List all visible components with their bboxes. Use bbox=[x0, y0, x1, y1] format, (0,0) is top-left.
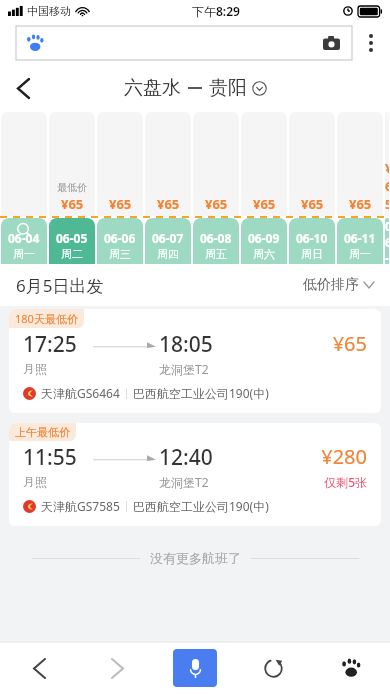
staticText: 周五 bbox=[205, 247, 227, 261]
staticText: 天津航GS6464 bbox=[41, 385, 120, 401]
staticText: 180天最低价 bbox=[15, 311, 78, 326]
staticText: 六盘水 bbox=[124, 76, 181, 100]
button[interactable]: Refresh bbox=[234, 642, 312, 694]
staticText: 06-08 bbox=[200, 230, 232, 246]
staticText: 没有更多航班了 bbox=[150, 550, 241, 566]
button[interactable]: ¥65 bbox=[336, 112, 384, 264]
staticText: 06-11 bbox=[344, 230, 376, 246]
staticText: ¥280 bbox=[321, 443, 367, 470]
staticText: 06-12 bbox=[385, 218, 389, 261]
staticText: 06-06 bbox=[104, 230, 136, 246]
button[interactable]: 06-04 bbox=[0, 112, 48, 264]
button[interactable]: Back bbox=[0, 642, 78, 694]
button[interactable]: 180天最低价 bbox=[9, 309, 381, 413]
staticText: 低价排序 bbox=[303, 276, 359, 294]
staticText: ¥65 bbox=[332, 330, 367, 357]
button[interactable]: Search bbox=[16, 26, 352, 60]
staticText: 仅剩5张 bbox=[324, 474, 367, 490]
button[interactable]: ¥65 bbox=[192, 112, 240, 264]
staticText: ¥65 bbox=[205, 195, 228, 213]
staticText: ¥65 bbox=[301, 195, 324, 213]
staticText: 月照 bbox=[23, 474, 47, 489]
staticText: 最低价 bbox=[57, 181, 87, 194]
staticText: ¥65 bbox=[253, 195, 276, 213]
staticText: 6月5日出发 bbox=[16, 274, 104, 297]
staticText: 周一 bbox=[349, 247, 371, 261]
staticText: ¥65 bbox=[349, 195, 372, 213]
staticText: 中国移动 bbox=[27, 4, 71, 18]
staticText: 06-10 bbox=[296, 230, 328, 246]
button[interactable]: ¥65 bbox=[288, 112, 336, 264]
button[interactable]: 六盘水 bbox=[124, 76, 267, 100]
staticText: 06-04 bbox=[8, 230, 40, 246]
button[interactable]: ¥65 bbox=[96, 112, 144, 264]
staticText: 06-09 bbox=[248, 230, 280, 246]
staticText: 18:05 bbox=[159, 330, 213, 359]
staticText: 龙洞堡T2 bbox=[159, 361, 209, 377]
staticText: 周二 bbox=[61, 247, 83, 261]
staticText: 月照 bbox=[23, 361, 47, 376]
button[interactable]: Voice search bbox=[173, 649, 217, 687]
staticText: ¥65 bbox=[61, 195, 84, 213]
staticText: 下午8:29 bbox=[192, 3, 240, 19]
button[interactable]: 最低价 bbox=[48, 112, 96, 264]
staticText: 周三 bbox=[109, 247, 131, 261]
staticText: ¥65 bbox=[385, 159, 389, 213]
staticText: 天津航GS7585 bbox=[41, 498, 120, 514]
staticText: 06-07 bbox=[152, 230, 184, 246]
staticText: ¥65 bbox=[109, 195, 132, 213]
button[interactable]: ¥65 bbox=[144, 112, 192, 264]
button[interactable]: Forward bbox=[78, 642, 156, 694]
button[interactable]: 上午最低价 bbox=[9, 423, 381, 526]
staticText: 17:25 bbox=[23, 330, 77, 359]
staticText: 周日 bbox=[301, 247, 323, 261]
staticText: 巴西航空工业公司190(中) bbox=[133, 498, 269, 514]
button[interactable]: Baidu home bbox=[312, 642, 390, 694]
staticText: 周六 bbox=[253, 247, 275, 261]
button[interactable]: ¥65 bbox=[384, 112, 390, 264]
button[interactable]: More options bbox=[352, 22, 390, 64]
staticText: 巴西航空工业公司190(中) bbox=[133, 385, 269, 401]
button[interactable]: ¥65 bbox=[240, 112, 288, 264]
staticText: 龙洞堡T2 bbox=[159, 474, 209, 490]
staticText: 11:55 bbox=[23, 443, 77, 472]
staticText: 周四 bbox=[157, 247, 179, 261]
button[interactable]: 低价排序 bbox=[303, 276, 374, 294]
staticText: ¥65 bbox=[157, 195, 180, 213]
staticText: 周一 bbox=[13, 247, 35, 261]
button[interactable]: Back bbox=[0, 64, 46, 112]
staticText: 06-05 bbox=[56, 230, 88, 246]
staticText: 贵阳 bbox=[209, 76, 247, 100]
staticText: 12:40 bbox=[159, 443, 213, 472]
staticText: 上午最低价 bbox=[15, 425, 70, 439]
